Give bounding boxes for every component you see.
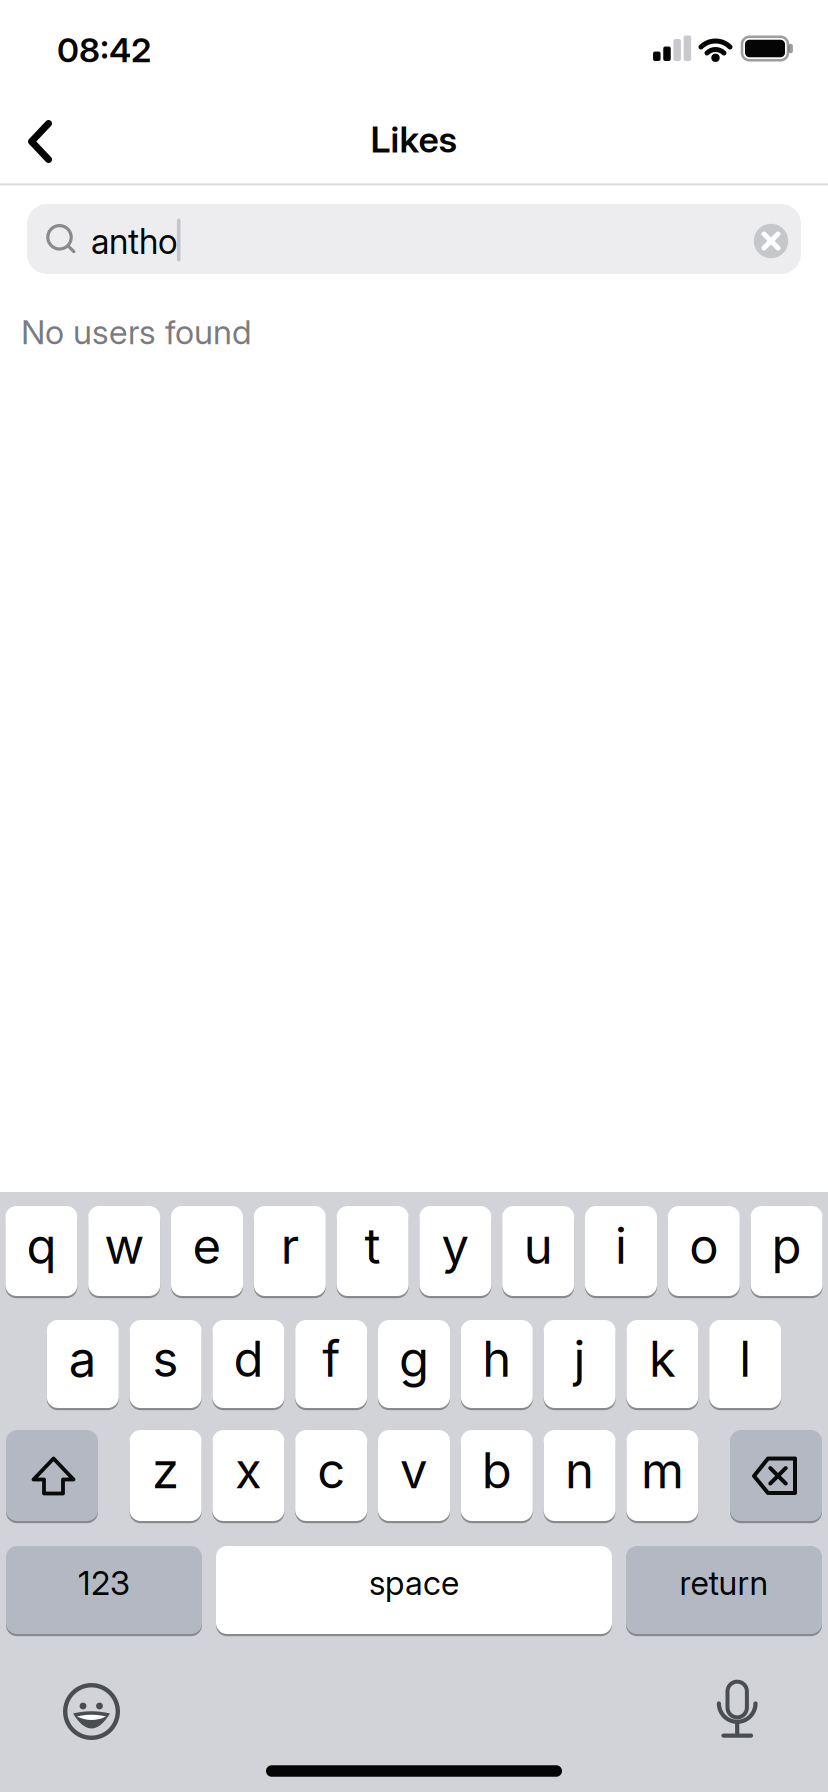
button[interactable]: o [668, 1206, 740, 1296]
button[interactable]: j [544, 1320, 616, 1408]
button[interactable]: g [378, 1320, 450, 1408]
button[interactable]: v [378, 1430, 450, 1521]
button[interactable]: x [212, 1430, 284, 1521]
button[interactable]: return [626, 1546, 822, 1634]
button[interactable]: i [585, 1206, 657, 1296]
button[interactable]: a [47, 1320, 119, 1408]
button[interactable]: c [295, 1430, 367, 1521]
staticText: z [152, 1441, 179, 1500]
staticText: antho [91, 221, 178, 262]
button[interactable]: w [88, 1206, 160, 1296]
button[interactable]: t [337, 1206, 409, 1296]
button[interactable]: Clear text [754, 224, 788, 258]
button[interactable]: m [626, 1430, 698, 1521]
staticText: p [772, 1216, 802, 1276]
staticText: v [400, 1441, 428, 1500]
button[interactable]: Dictate [705, 1676, 769, 1740]
button[interactable]: r [254, 1206, 326, 1296]
button[interactable]: Numbers [6, 1546, 202, 1634]
button[interactable]: Shift [6, 1430, 98, 1521]
staticText: 123 [78, 1563, 130, 1603]
button[interactable]: p [751, 1206, 823, 1296]
staticText: h [482, 1329, 511, 1389]
button[interactable]: antho [27, 204, 801, 274]
button[interactable]: e [171, 1206, 243, 1296]
staticText: return [679, 1563, 768, 1603]
staticText: l [739, 1329, 751, 1389]
button[interactable]: q [5, 1206, 77, 1296]
staticText: c [317, 1441, 345, 1500]
staticText: 08:42 [57, 29, 151, 70]
staticText: y [441, 1216, 469, 1276]
staticText: i [615, 1216, 627, 1276]
button[interactable]: space [216, 1546, 612, 1634]
staticText: t [365, 1216, 381, 1276]
staticText: j [574, 1329, 586, 1389]
staticText: s [153, 1329, 179, 1389]
staticText: o [689, 1216, 718, 1276]
staticText: m [641, 1441, 684, 1500]
staticText: d [233, 1329, 263, 1389]
staticText: Likes [370, 118, 457, 161]
staticText: k [649, 1329, 676, 1389]
button[interactable]: Back [14, 114, 70, 169]
staticText: space [369, 1563, 459, 1603]
staticText: b [482, 1441, 512, 1500]
staticText: x [235, 1441, 262, 1500]
staticText: r [281, 1216, 299, 1276]
staticText: e [192, 1216, 221, 1276]
staticText: g [399, 1329, 429, 1389]
button[interactable]: l [709, 1320, 781, 1408]
button[interactable]: n [544, 1430, 616, 1521]
button[interactable]: y [419, 1206, 491, 1296]
button[interactable]: u [502, 1206, 574, 1296]
button[interactable]: f [295, 1320, 367, 1408]
button[interactable]: z [130, 1430, 202, 1521]
staticText: a [69, 1329, 97, 1389]
staticText: w [104, 1216, 144, 1276]
button[interactable]: Emoji [61, 1681, 121, 1741]
button[interactable]: k [626, 1320, 698, 1408]
staticText: u [524, 1216, 553, 1276]
staticText: n [565, 1441, 594, 1500]
staticText: q [26, 1216, 56, 1276]
button[interactable]: d [212, 1320, 284, 1408]
button[interactable]: h [461, 1320, 533, 1408]
button[interactable]: Delete [730, 1430, 822, 1521]
button[interactable]: s [130, 1320, 202, 1408]
staticText: f [322, 1329, 340, 1389]
button[interactable]: b [461, 1430, 533, 1521]
staticText: No users found [21, 312, 252, 352]
